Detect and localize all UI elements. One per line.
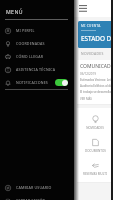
staticText: 06/12/2019 [80,72,96,76]
staticText: CÓMO LLEGAR [16,54,44,59]
button[interactable]: CERRAR SESIÓN [0,194,74,200]
button[interactable]: NOVEDADES [77,112,113,135]
staticText: MENÚ [6,8,23,15]
staticText: ASISTENCIA TÉCNICA [16,67,56,72]
button[interactable]: DOCUMENTOS [77,135,113,158]
button[interactable]: COMUNICADO [77,60,113,105]
staticText: ESTADO DE CUENTA [81,34,113,43]
staticText: El trabajo se desarrollar [80,90,113,94]
staticText: CAMBIAR USUARIO [16,185,52,190]
staticText: NOTIFICACIONES [16,80,49,85]
staticText: Auditoria Edificios al dia p [80,84,113,88]
staticText: COORDENADAS [16,41,45,46]
button[interactable]: MI PERFIL [0,24,74,37]
button[interactable]: MI CUENTA [78,21,113,48]
staticText: CERRAR SESIÓN [16,198,46,200]
button[interactable]: RESERVAS MULTI [77,158,113,181]
button[interactable]: Open navigation menu [75,0,90,15]
button[interactable]: NOTIFICACIONES [0,76,74,89]
button[interactable]: ASISTENCIA TÉCNICA [0,63,74,76]
staticText: MI PERFIL [16,28,35,33]
staticText: COMUNICADO [80,63,113,70]
button[interactable]: CAMBIAR USUARIO [0,181,74,194]
button[interactable]: CÓMO LLEGAR [0,50,74,63]
staticText: DOCUMENTOS [85,149,106,153]
staticText: Estimados Vecinos: Le info [80,78,113,82]
staticText: NOVEDADES [86,126,104,130]
staticText: VER MÁS [80,97,92,101]
staticText: RESERVAS MULTI [83,172,107,176]
staticText: NOVEDADES [81,51,104,56]
staticText: MI CUENTA [81,24,101,28]
button[interactable]: COORDENADAS [0,37,74,50]
